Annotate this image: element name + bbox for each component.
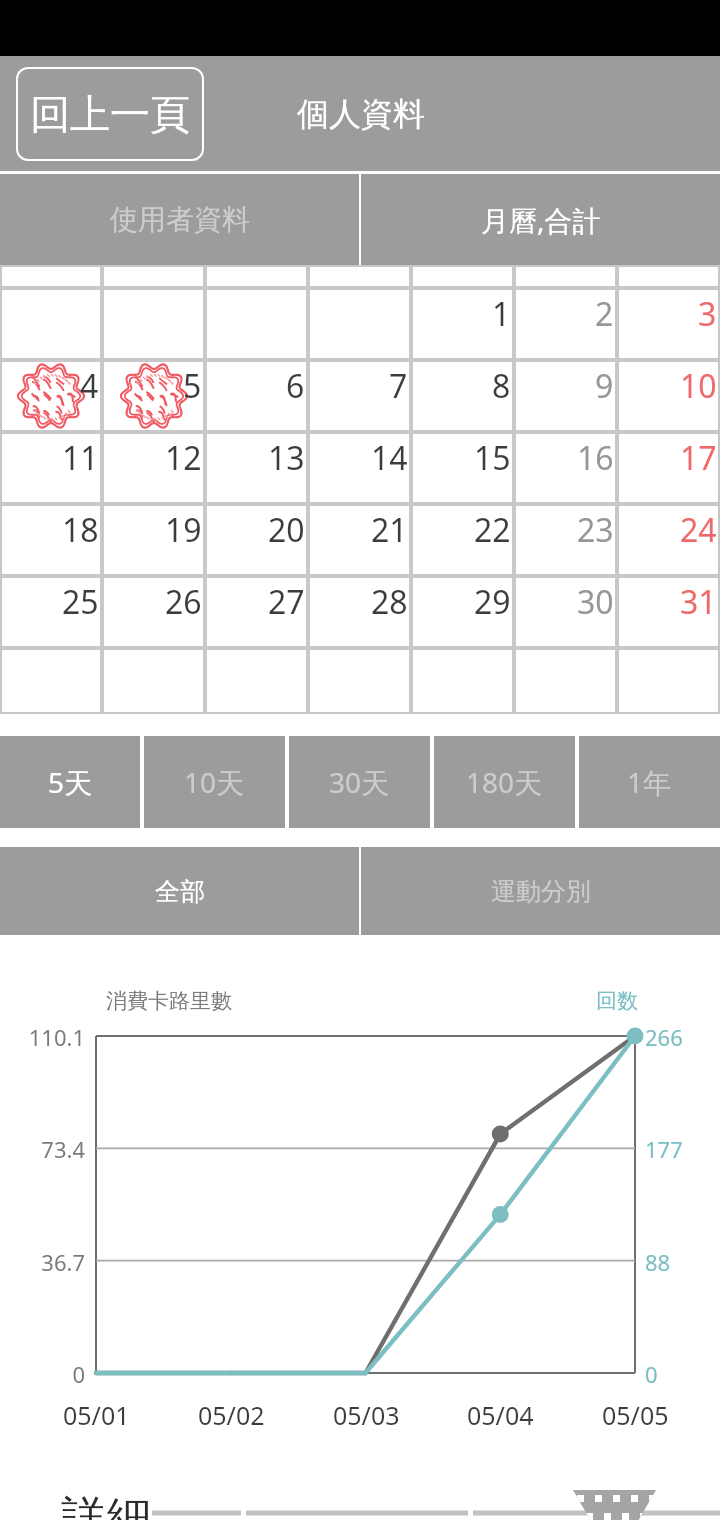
button[interactable]: 28 [308, 576, 411, 648]
button[interactable] [205, 648, 308, 714]
staticText: 8 [492, 364, 511, 408]
staticText: 05/03 [333, 1398, 400, 1432]
staticText: 18 [62, 508, 99, 552]
button[interactable]: 1年 [579, 736, 720, 828]
button[interactable]: 16 [514, 432, 617, 504]
staticText: 22 [474, 508, 511, 552]
staticText: 28 [371, 580, 408, 624]
staticText: 29 [474, 580, 511, 624]
staticText: 10天 [184, 763, 245, 801]
button[interactable]: 180天 [434, 736, 575, 828]
button[interactable] [0, 288, 102, 360]
button[interactable]: 19 [102, 504, 205, 576]
button[interactable]: 月曆,合計 [361, 174, 720, 265]
button[interactable]: 18 [0, 504, 102, 576]
staticText: 3 [698, 292, 717, 336]
button[interactable]: 6 [205, 360, 308, 432]
staticText: 88 [645, 1247, 671, 1277]
staticText: 7 [389, 364, 408, 408]
staticText: 16 [577, 436, 614, 480]
staticText: 0 [72, 1359, 85, 1389]
staticText: 1 [492, 292, 511, 336]
staticText: 25 [62, 580, 99, 624]
button[interactable] [102, 288, 205, 360]
button[interactable]: 21 [308, 504, 411, 576]
staticText: 5 [183, 364, 202, 408]
button[interactable]: 使用者資料 [0, 174, 359, 265]
button[interactable] [308, 648, 411, 714]
staticText: 13 [268, 436, 305, 480]
staticText: 9 [595, 364, 614, 408]
staticText: 使用者資料 [110, 202, 250, 237]
button[interactable]: 5 [102, 360, 205, 432]
button[interactable]: 15 [411, 432, 514, 504]
staticText: 6 [286, 364, 305, 408]
button[interactable]: 7 [308, 360, 411, 432]
button[interactable]: 30 [514, 576, 617, 648]
staticText: 月曆,合計 [481, 201, 601, 239]
button[interactable]: 10天 [144, 736, 285, 828]
staticText: 05/02 [198, 1398, 265, 1432]
button[interactable]: 17 [617, 432, 720, 504]
staticText: 個人資料 [297, 94, 425, 134]
staticText: 30 [577, 580, 614, 624]
staticText: 73.4 [41, 1134, 85, 1164]
button[interactable]: 2 [514, 288, 617, 360]
button[interactable]: 14 [308, 432, 411, 504]
staticText: 10 [680, 364, 717, 408]
button[interactable]: 10 [617, 360, 720, 432]
staticText: 15 [474, 436, 511, 480]
button[interactable] [411, 648, 514, 714]
button[interactable] [617, 648, 720, 714]
staticText: 0 [645, 1359, 658, 1389]
button[interactable]: 23 [514, 504, 617, 576]
staticText: 19 [165, 508, 202, 552]
button[interactable] [514, 648, 617, 714]
staticText: 回数 [596, 988, 638, 1014]
staticText: 運動分別 [491, 876, 591, 907]
button[interactable]: 31 [617, 576, 720, 648]
button[interactable]: 1 [411, 288, 514, 360]
button[interactable]: 30天 [289, 736, 430, 828]
button[interactable]: 22 [411, 504, 514, 576]
button[interactable]: 回上一頁 [16, 67, 204, 161]
button[interactable] [0, 648, 102, 714]
button[interactable]: 24 [617, 504, 720, 576]
button[interactable]: 8 [411, 360, 514, 432]
button[interactable]: 運動分別 [361, 847, 720, 935]
staticText: 17 [680, 436, 717, 480]
staticText: 11 [62, 436, 99, 480]
button[interactable]: 3 [617, 288, 720, 360]
button[interactable]: 20 [205, 504, 308, 576]
staticText: 全部 [155, 876, 205, 907]
button[interactable]: 29 [411, 576, 514, 648]
staticText: 2 [595, 292, 614, 336]
button[interactable] [308, 288, 411, 360]
button[interactable]: 27 [205, 576, 308, 648]
staticText: 14 [371, 436, 408, 480]
staticText: 詳細 [61, 1490, 151, 1520]
button[interactable]: 全部 [0, 847, 359, 935]
staticText: 1年 [627, 763, 672, 801]
staticText: 266 [645, 1022, 683, 1052]
button[interactable]: 4 [0, 360, 102, 432]
staticText: 消費卡路里數 [106, 988, 232, 1014]
staticText: 26 [165, 580, 202, 624]
staticText: 177 [645, 1134, 683, 1164]
button[interactable] [102, 648, 205, 714]
button[interactable]: 11 [0, 432, 102, 504]
button[interactable]: 9 [514, 360, 617, 432]
button[interactable]: 26 [102, 576, 205, 648]
staticText: 20 [268, 508, 305, 552]
staticText: 24 [680, 508, 717, 552]
staticText: 23 [577, 508, 614, 552]
staticText: 31 [680, 580, 717, 624]
button[interactable]: 25 [0, 576, 102, 648]
staticText: 30天 [329, 763, 390, 801]
button[interactable]: 5天 [0, 736, 140, 828]
button[interactable]: 12 [102, 432, 205, 504]
button[interactable] [205, 288, 308, 360]
staticText: 05/04 [467, 1398, 534, 1432]
button[interactable]: 13 [205, 432, 308, 504]
staticText: 5天 [48, 763, 93, 801]
